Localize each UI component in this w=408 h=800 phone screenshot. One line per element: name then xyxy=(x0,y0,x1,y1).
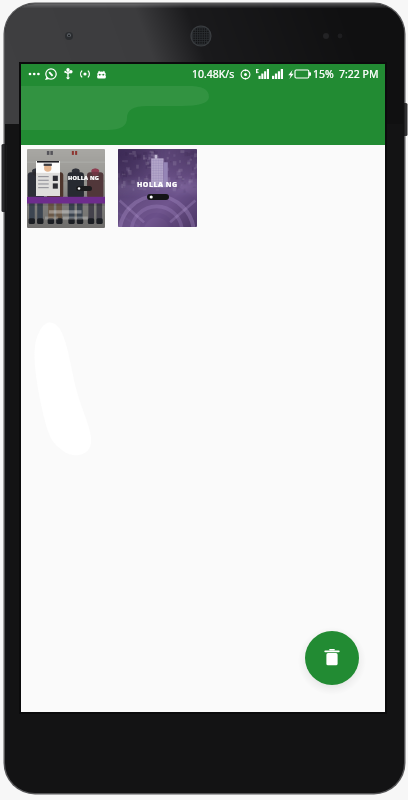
button[interactable]: Delete xyxy=(305,631,359,685)
staticText: HOLLA NG xyxy=(137,180,178,190)
staticText: HOLLA NG xyxy=(68,174,100,182)
staticText: 15% xyxy=(313,67,334,81)
button[interactable]: HOLLA NG xyxy=(118,149,197,227)
staticText: 7:22 PM xyxy=(339,67,379,81)
button[interactable]: HOLLA NG xyxy=(27,149,105,228)
staticText: 10.48K/s xyxy=(192,67,235,81)
